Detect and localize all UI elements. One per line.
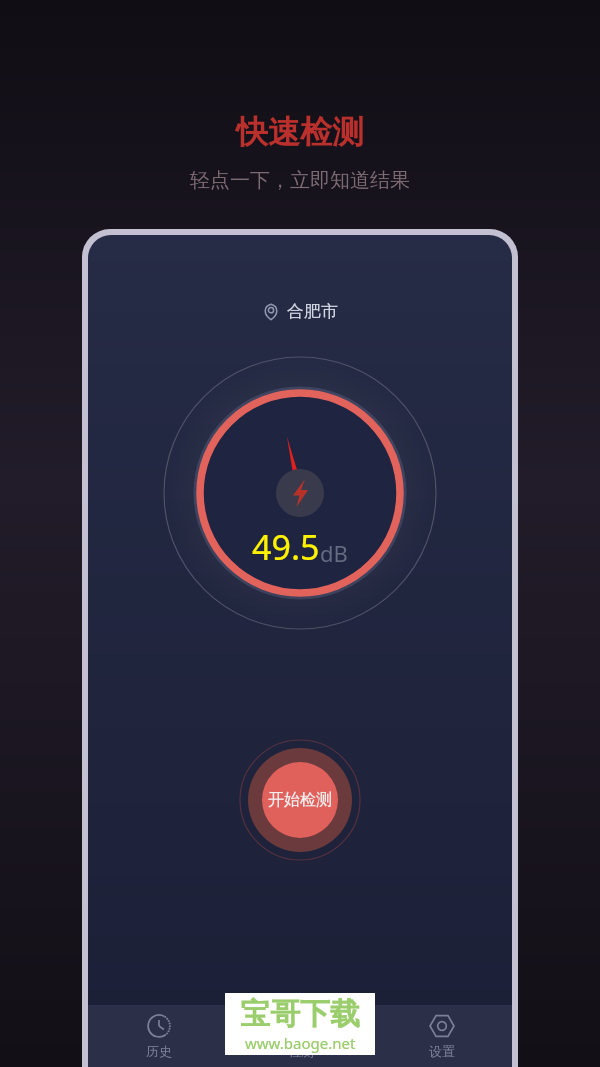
staticText: dB	[320, 538, 348, 568]
button[interactable]: 合肥市	[254, 297, 346, 326]
staticText: 设置	[429, 1043, 455, 1059]
button[interactable]: Detect	[230, 1005, 371, 1067]
staticText: 合肥市	[287, 301, 338, 322]
staticText: 快速检测	[236, 112, 364, 152]
staticText: 轻点一下，立即知道结果	[190, 168, 410, 193]
button[interactable]: 开始检测	[238, 738, 362, 862]
button[interactable]: Settings	[371, 1005, 512, 1067]
staticText: 历史	[146, 1043, 172, 1059]
staticText: 开始检测	[268, 790, 332, 810]
staticText: 检测	[288, 1043, 314, 1059]
staticText: 49.5	[252, 524, 320, 570]
button[interactable]: History	[88, 1005, 230, 1067]
staticText: www.baoge.net	[245, 1033, 356, 1053]
staticText: 宝哥下载	[240, 995, 360, 1033]
